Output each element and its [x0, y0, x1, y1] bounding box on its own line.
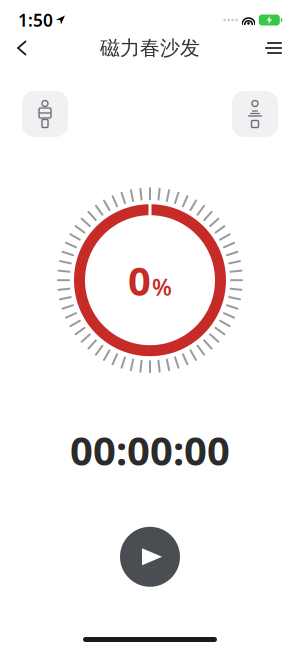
staticText: 0 — [128, 254, 151, 307]
button[interactable]: Male profile — [22, 91, 68, 137]
button[interactable]: Menu — [251, 32, 296, 64]
button[interactable]: Female profile — [232, 91, 278, 137]
button[interactable]: Back — [4, 31, 40, 65]
staticText: 磁力春沙发 — [100, 36, 200, 60]
button[interactable]: Start — [120, 527, 180, 587]
staticText: 00:00:00 — [70, 423, 230, 476]
staticText: 1:50 — [18, 8, 53, 31]
staticText: % — [152, 272, 172, 302]
